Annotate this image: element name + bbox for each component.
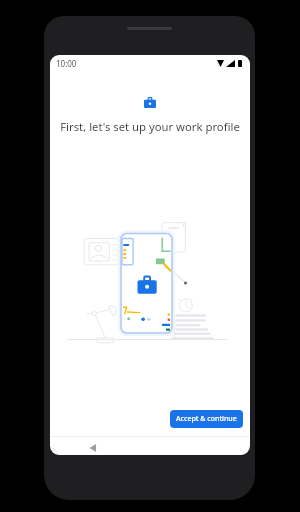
button[interactable]: Accept & continue: [170, 410, 243, 428]
button[interactable]: Back: [86, 441, 100, 455]
staticText: Accept & continue: [176, 414, 237, 424]
staticText: 10:00: [56, 58, 77, 69]
staticText: First, let's set up your work profile: [50, 119, 250, 134]
